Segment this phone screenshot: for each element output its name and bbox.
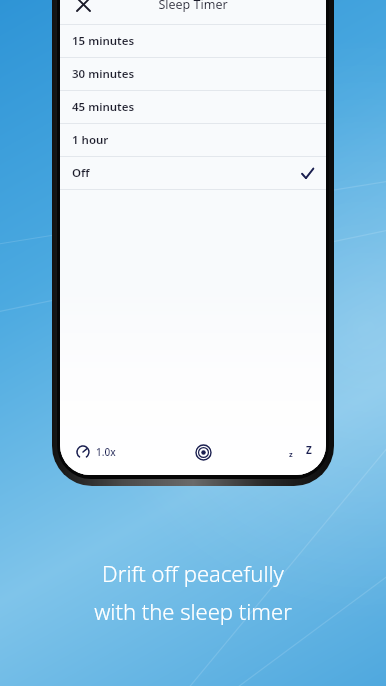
staticText: z [289, 449, 293, 459]
button[interactable]: 1 hour [60, 124, 326, 156]
button[interactable]: 15 minutes [60, 25, 326, 57]
button[interactable]: 1.0x [72, 441, 120, 463]
staticText: Sleep Timer [158, 0, 228, 13]
staticText: Off [72, 165, 90, 181]
button[interactable]: Sleep timer [286, 438, 314, 466]
button[interactable]: Close [66, 0, 100, 21]
staticText: 1 hour [72, 132, 109, 148]
staticText: 15 minutes [72, 33, 135, 49]
staticText: 30 minutes [72, 66, 135, 82]
staticText: Z [306, 443, 312, 457]
staticText: 45 minutes [72, 99, 135, 115]
button[interactable]: Cast [190, 439, 216, 465]
button[interactable]: 45 minutes [60, 91, 326, 123]
staticText: 1.0x [96, 445, 116, 459]
button[interactable]: Off [60, 157, 326, 189]
button[interactable]: 30 minutes [60, 58, 326, 90]
staticText: Drift off peacefully [102, 558, 284, 588]
staticText: with the sleep timer [94, 596, 292, 626]
